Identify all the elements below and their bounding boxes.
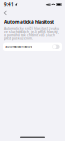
staticText: Automatická hlasitost [4,19,54,25]
staticText: Automatická hlasitost [5,45,32,48]
staticText: 9:41 [4,1,14,8]
staticText: Automaticky sníží hlasitost zvuku ve slu… [4,27,59,40]
button[interactable]: Back [0,9,11,17]
button[interactable]: Automatická hlasitost [3,43,62,51]
